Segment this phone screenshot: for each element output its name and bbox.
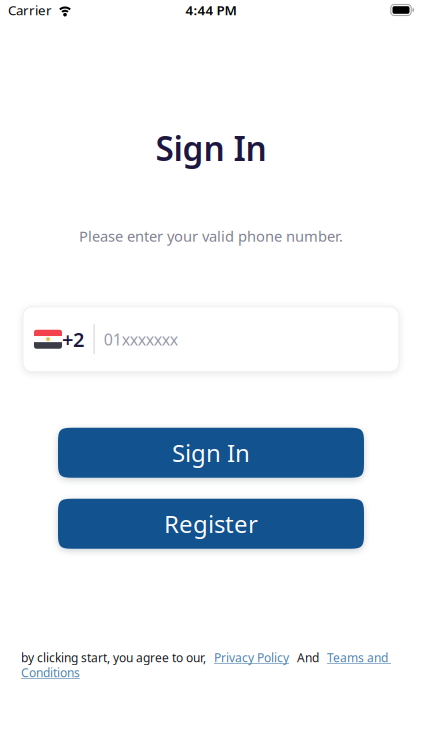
staticText: Register [164,508,258,540]
staticText: +2 [62,326,84,353]
staticText: 4:44 PM [185,1,236,19]
staticText: Teams and [327,649,391,665]
staticText: Please enter your valid phone number. [79,226,343,246]
staticText: Carrier [8,1,52,19]
staticText: Conditions [21,664,80,680]
staticText: And [297,649,319,665]
staticText: 01xxxxxxx [104,329,178,350]
staticText: Privacy Policy [214,649,289,665]
button[interactable]: Register [58,499,364,549]
button[interactable]: Teams and [327,649,391,665]
staticText: by clicking start, you agree to our, [21,649,206,665]
button[interactable]: Privacy Policy [214,649,289,665]
staticText: Sign In [172,437,250,469]
button[interactable]: Conditions [21,664,80,680]
staticText: Sign In [155,126,266,170]
button[interactable]: Sign In [58,428,364,478]
